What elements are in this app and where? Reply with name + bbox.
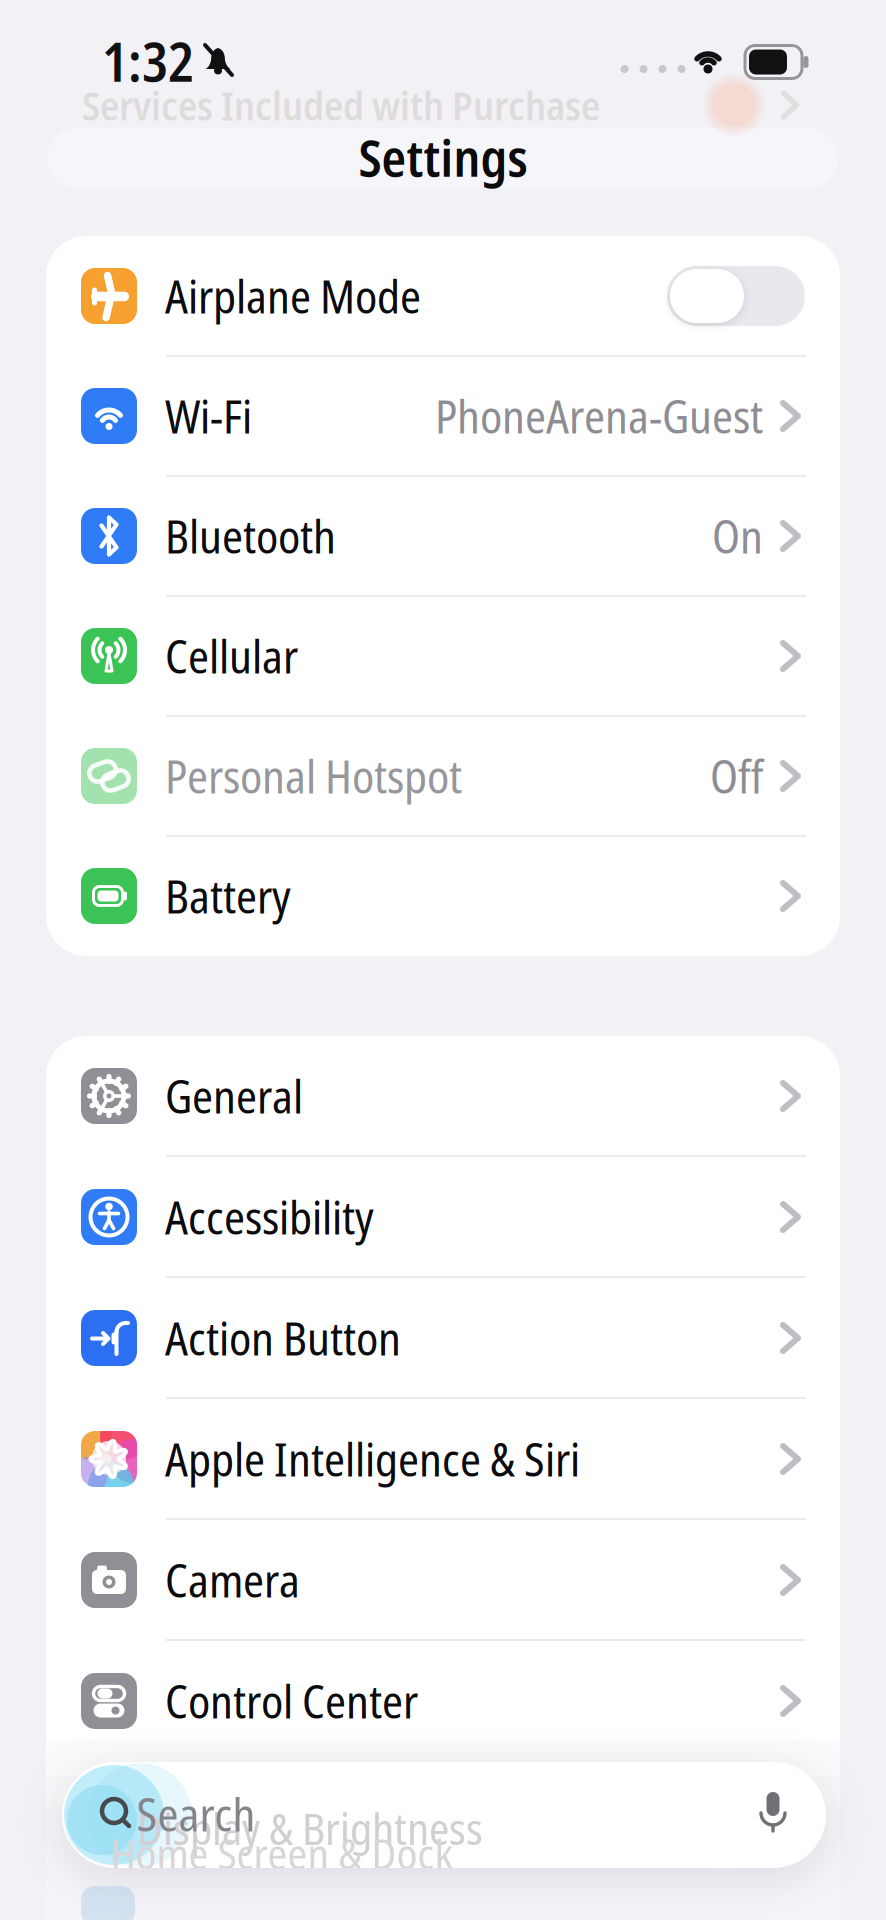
button[interactable]: Cellular bbox=[46, 596, 840, 716]
staticText: Off bbox=[710, 745, 763, 807]
button[interactable]: Accessibility bbox=[46, 1156, 840, 1277]
button[interactable]: Personal Hotspot bbox=[46, 716, 840, 836]
button[interactable]: Control Center bbox=[46, 1640, 840, 1761]
button[interactable]: Bluetooth bbox=[46, 476, 840, 596]
button[interactable]: Battery bbox=[46, 836, 840, 956]
staticText: Airplane Mode bbox=[165, 265, 421, 327]
staticText: Battery bbox=[165, 865, 291, 927]
staticText: Wi-Fi bbox=[165, 385, 252, 447]
button[interactable]: Airplane Mode bbox=[46, 236, 840, 356]
staticText: PhoneArena-Guest bbox=[435, 385, 763, 447]
staticText: Services Included with Purchase bbox=[82, 78, 600, 132]
staticText: Action Button bbox=[165, 1307, 401, 1369]
button[interactable]: Display & Brightness bbox=[62, 1762, 826, 1868]
staticText: Cellular bbox=[165, 625, 298, 687]
button[interactable]: Apple Intelligence & Siri bbox=[46, 1398, 840, 1519]
staticText: Bluetooth bbox=[165, 505, 336, 567]
button[interactable]: Wi-Fi bbox=[46, 356, 840, 476]
button[interactable]: Dictation bbox=[757, 1791, 789, 1833]
staticText: 1:32 bbox=[102, 25, 194, 97]
staticText: General bbox=[165, 1065, 303, 1127]
staticText: Camera bbox=[165, 1549, 300, 1611]
staticText: Home Screen & Dock bbox=[110, 1824, 453, 1882]
staticText: Accessibility bbox=[165, 1186, 374, 1248]
button[interactable]: General bbox=[46, 1035, 840, 1156]
staticText: Search bbox=[136, 1783, 255, 1845]
staticText: Apple Intelligence & Siri bbox=[165, 1428, 580, 1490]
staticText: Control Center bbox=[165, 1670, 418, 1732]
staticText: On bbox=[712, 505, 763, 567]
button[interactable]: Action Button bbox=[46, 1277, 840, 1398]
button[interactable]: Camera bbox=[46, 1519, 840, 1640]
staticText: Personal Hotspot bbox=[165, 745, 462, 807]
staticText: Display & Brightness bbox=[137, 1798, 483, 1858]
staticText: Settings bbox=[358, 122, 527, 191]
